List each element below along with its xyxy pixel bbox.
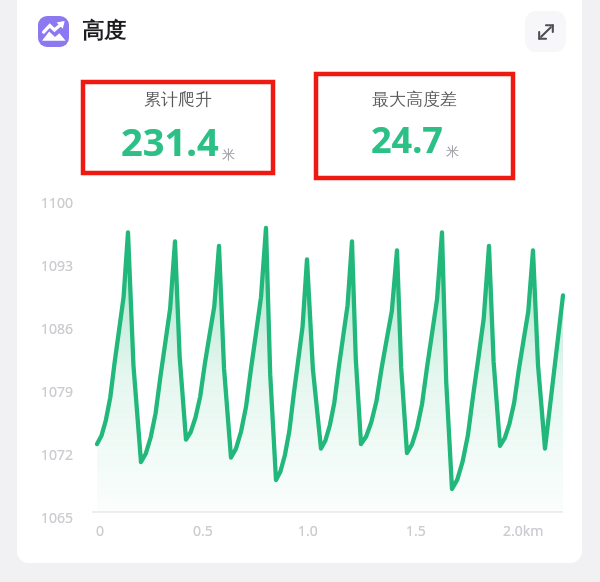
staticText: 0 xyxy=(96,521,105,540)
staticText: 1072 xyxy=(41,445,74,464)
button[interactable]: 累计爬升 xyxy=(83,82,273,173)
staticText: 2.0km xyxy=(503,521,544,540)
staticText: 1100 xyxy=(41,193,74,212)
button[interactable]: 最大高度差 xyxy=(316,74,513,178)
staticText: 231.4 xyxy=(121,115,219,167)
staticText: 1079 xyxy=(41,382,74,401)
staticText: 米 xyxy=(446,143,459,159)
staticText: 1.5 xyxy=(406,521,426,540)
staticText: 最大高度差 xyxy=(372,89,457,110)
staticText: 1065 xyxy=(41,508,74,527)
staticText: 高度 xyxy=(82,17,126,45)
staticText: 0.5 xyxy=(193,521,213,540)
staticText: 累计爬升 xyxy=(144,89,212,110)
staticText: 1086 xyxy=(41,319,74,338)
staticText: 24.7 xyxy=(371,115,443,164)
button[interactable]: 全屏展开 xyxy=(525,11,566,52)
staticText: 1093 xyxy=(41,256,74,275)
staticText: 米 xyxy=(222,146,235,162)
staticText: 1.0 xyxy=(298,521,318,540)
